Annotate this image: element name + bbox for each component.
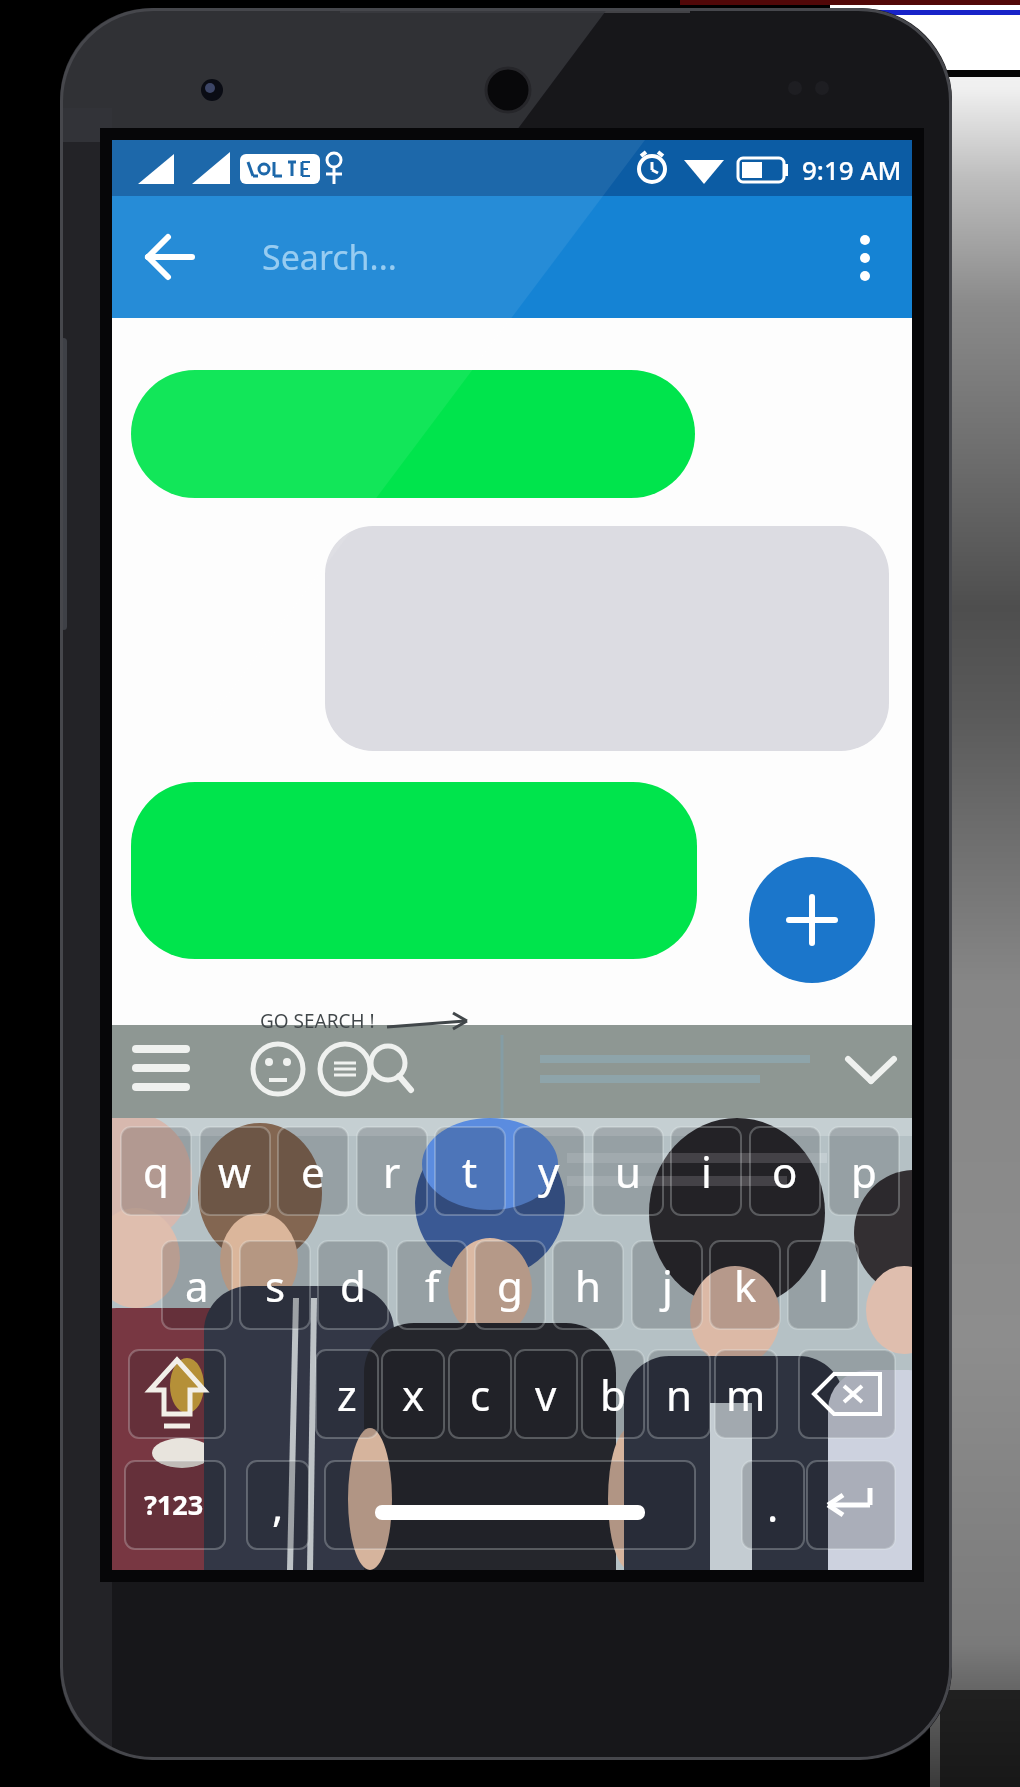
button[interactable] xyxy=(322,1459,697,1551)
button[interactable]: k xyxy=(709,1239,781,1331)
staticText: n xyxy=(666,1366,692,1423)
staticText: u xyxy=(615,1143,641,1200)
button[interactable]: c xyxy=(450,1348,510,1440)
staticText: q xyxy=(143,1143,169,1200)
staticText: r xyxy=(383,1143,401,1200)
staticText: GO SEARCH ! xyxy=(260,1008,375,1034)
button[interactable]: h xyxy=(552,1239,624,1331)
button[interactable]: z xyxy=(317,1348,377,1440)
button[interactable]: r xyxy=(356,1125,428,1217)
button[interactable]: . xyxy=(742,1459,804,1551)
button[interactable]: l xyxy=(787,1239,859,1331)
staticText: i xyxy=(701,1143,712,1200)
staticText: 9:19 AM xyxy=(802,152,902,187)
button[interactable] xyxy=(800,1348,895,1440)
button[interactable] xyxy=(120,1033,196,1111)
button[interactable]: s xyxy=(239,1239,311,1331)
button[interactable]: e xyxy=(277,1125,349,1217)
button[interactable]: m xyxy=(716,1348,776,1440)
staticText: m xyxy=(726,1366,766,1423)
button[interactable] xyxy=(840,226,890,290)
button[interactable]: x xyxy=(383,1348,443,1440)
button[interactable]: t xyxy=(434,1125,506,1217)
staticText: o xyxy=(772,1143,798,1200)
staticText: b xyxy=(600,1366,626,1423)
staticText: c xyxy=(470,1366,491,1423)
staticText: l xyxy=(818,1257,829,1314)
button[interactable]: i xyxy=(670,1125,742,1217)
button[interactable] xyxy=(325,526,889,751)
button[interactable] xyxy=(140,227,200,287)
staticText: k xyxy=(734,1257,757,1314)
staticText: t xyxy=(462,1143,478,1200)
button[interactable]: n xyxy=(649,1348,709,1440)
button[interactable] xyxy=(807,1459,895,1551)
staticText: y xyxy=(538,1143,560,1200)
button[interactable]: w xyxy=(199,1125,271,1217)
staticText: p xyxy=(851,1143,877,1200)
button[interactable] xyxy=(131,370,695,498)
button[interactable]: , xyxy=(247,1459,309,1551)
staticText: w xyxy=(218,1143,252,1200)
button[interactable] xyxy=(749,857,875,983)
staticText: . xyxy=(767,1477,779,1534)
staticText: e xyxy=(301,1143,325,1200)
button[interactable] xyxy=(832,1033,910,1111)
staticText: ?123 xyxy=(144,1486,204,1523)
staticText: g xyxy=(497,1257,523,1314)
staticText: j xyxy=(662,1257,673,1314)
button[interactable]: q xyxy=(120,1125,192,1217)
button[interactable]: a xyxy=(161,1239,233,1331)
staticText: h xyxy=(575,1257,601,1314)
button[interactable] xyxy=(131,782,697,959)
staticText: a xyxy=(185,1257,209,1314)
button[interactable] xyxy=(312,1033,378,1111)
button[interactable]: y xyxy=(513,1125,585,1217)
button[interactable] xyxy=(130,1348,225,1440)
button[interactable]: p xyxy=(828,1125,900,1217)
staticText: z xyxy=(337,1366,357,1423)
staticText: x xyxy=(402,1366,425,1423)
button[interactable]: o xyxy=(749,1125,821,1217)
staticText: d xyxy=(340,1257,366,1314)
staticText: , xyxy=(272,1477,284,1534)
button[interactable]: g xyxy=(474,1239,546,1331)
button[interactable]: d xyxy=(317,1239,389,1331)
staticText: Search... xyxy=(262,234,397,280)
button[interactable]: u xyxy=(592,1125,664,1217)
button[interactable] xyxy=(244,1033,310,1111)
button[interactable]: v xyxy=(516,1348,576,1440)
button[interactable]: Search... xyxy=(262,234,682,284)
staticText: s xyxy=(265,1257,286,1314)
staticText: v xyxy=(535,1366,557,1423)
button[interactable]: f xyxy=(396,1239,468,1331)
button[interactable]: j xyxy=(631,1239,703,1331)
button[interactable] xyxy=(360,1033,426,1111)
button[interactable]: b xyxy=(583,1348,643,1440)
staticText: f xyxy=(425,1257,440,1314)
